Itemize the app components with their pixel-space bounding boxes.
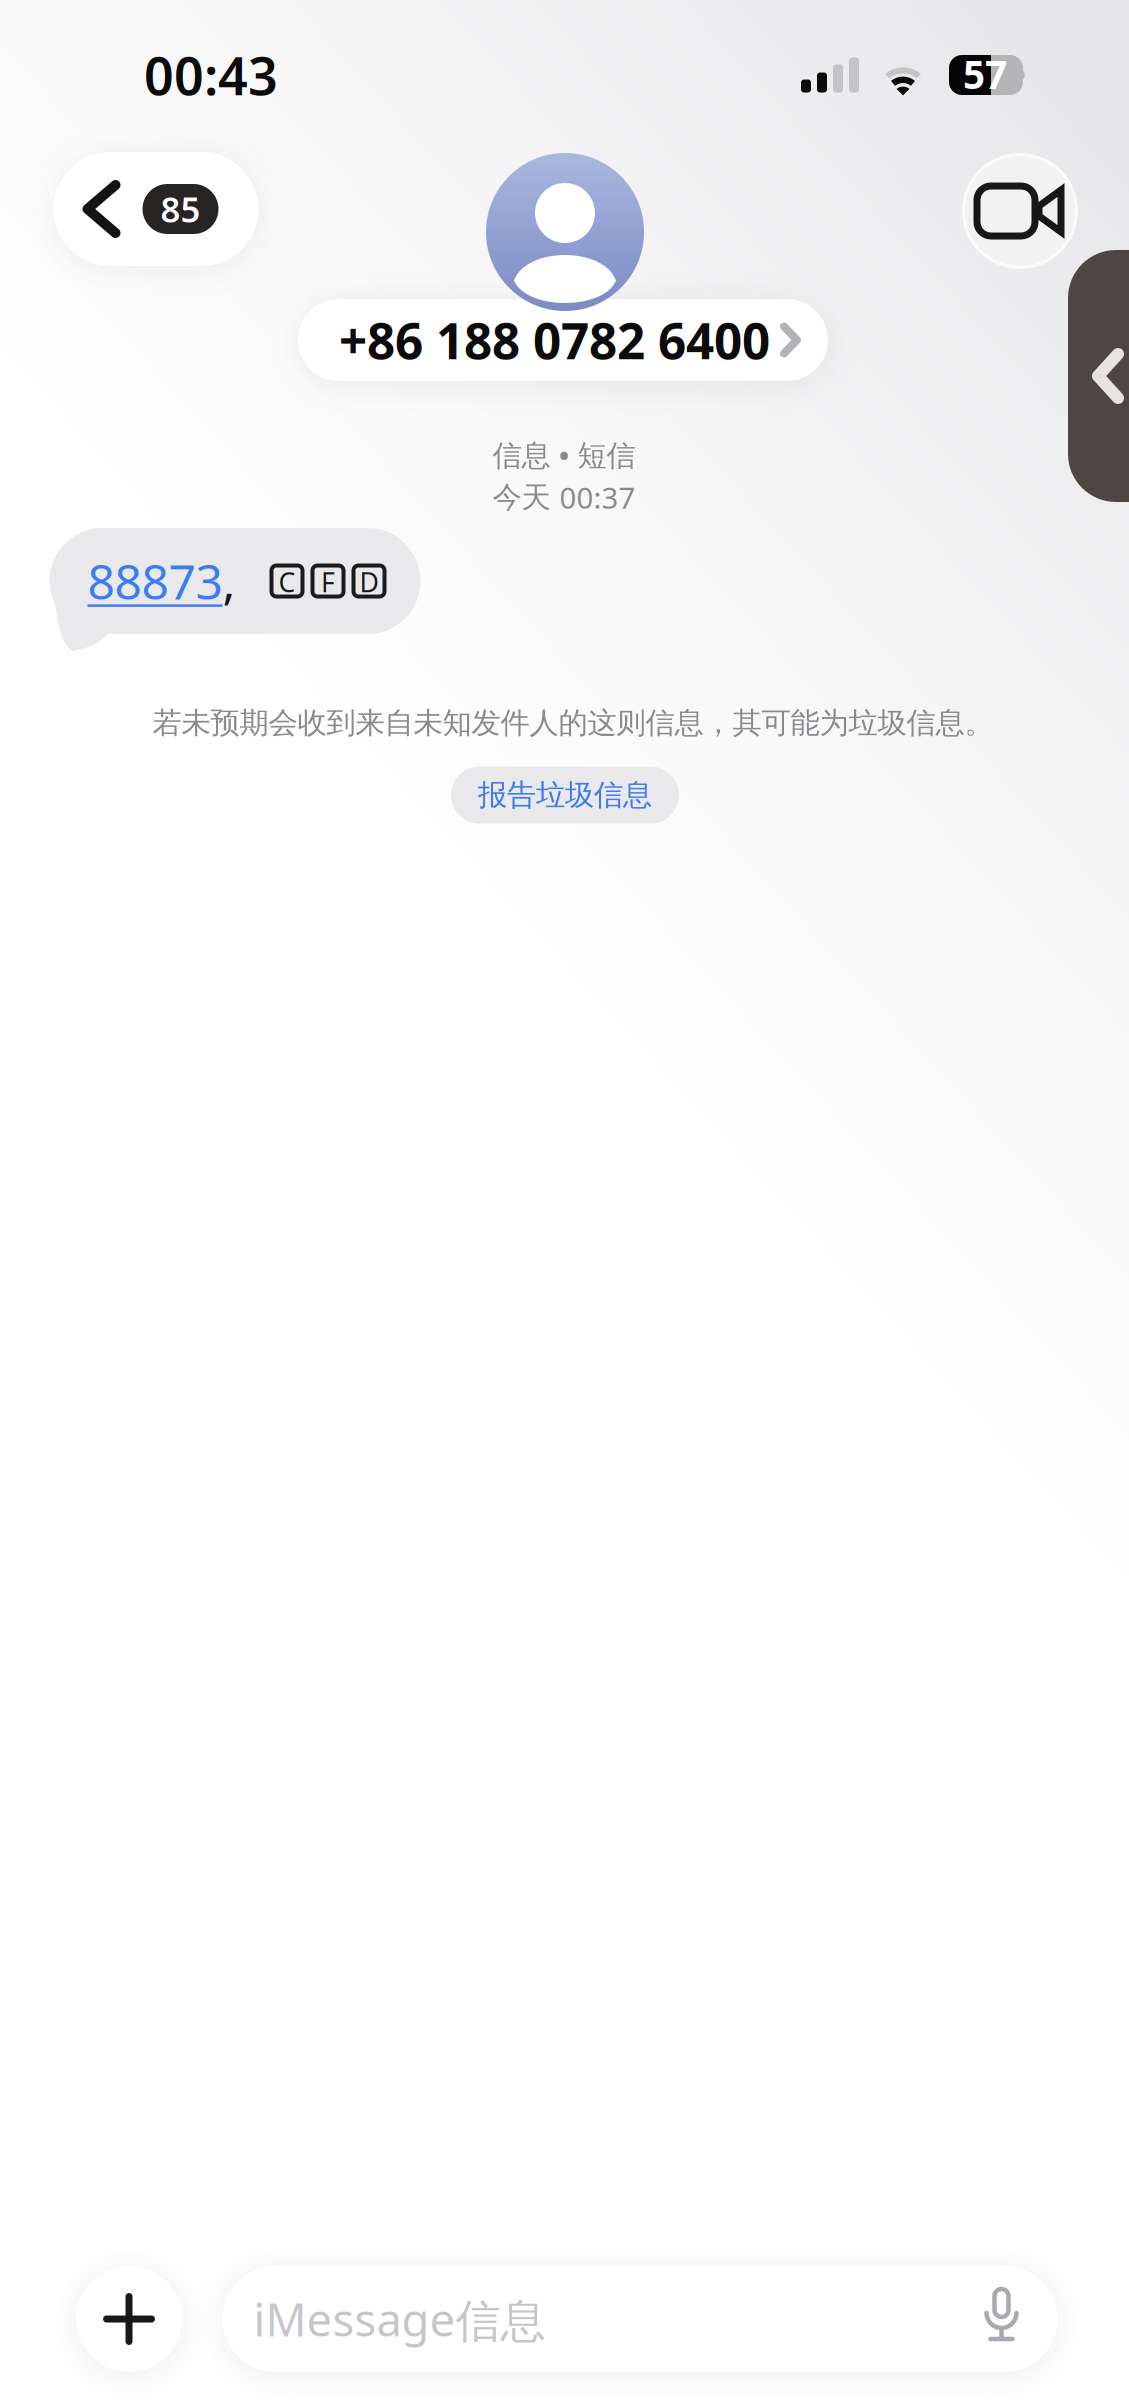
button[interactable]: 报告垃圾信息: [451, 766, 679, 823]
staticText: +86 188 0782 6400: [339, 307, 770, 373]
staticText: 信息 • 短信: [492, 435, 635, 474]
staticText: 00:43: [144, 40, 278, 110]
staticText: iMessage信息: [253, 2289, 545, 2349]
staticText: 报告垃圾信息: [478, 777, 652, 813]
staticText: 若未预期会收到来自未知发件人的这则信息，其可能为垃圾信息。: [152, 705, 993, 741]
button[interactable]: FaceTime video call: [963, 154, 1076, 267]
button[interactable]: Dictate message: [965, 2272, 1037, 2366]
staticText: D: [359, 564, 378, 600]
staticText: ,: [222, 549, 235, 613]
staticText: C: [278, 564, 295, 600]
staticText: 85: [160, 186, 200, 232]
staticText: 88873: [87, 549, 222, 613]
staticText: 今天: [492, 479, 550, 515]
button[interactable]: Apps and attachments: [76, 2266, 182, 2372]
button[interactable]: +86 188 0782 6400, contact details: [298, 299, 828, 381]
staticText: F: [321, 564, 335, 600]
staticText: 00:37: [559, 478, 635, 517]
button[interactable]: Back to Messages, 85 unread: [53, 152, 258, 266]
staticText: 57: [963, 48, 1007, 100]
